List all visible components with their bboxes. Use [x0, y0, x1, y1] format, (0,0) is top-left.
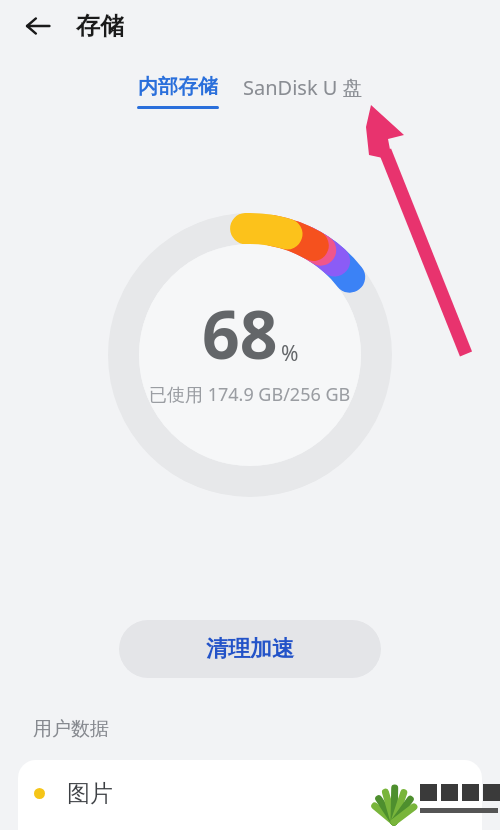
- staticText: %: [281, 339, 299, 368]
- staticText: 内部存储: [138, 74, 218, 99]
- button[interactable]: SanDisk U 盘: [239, 72, 367, 103]
- staticText: 68: [202, 288, 278, 378]
- staticText: 已使用 174.9 GB/256 GB: [149, 382, 351, 407]
- button[interactable]: 图片: [18, 760, 482, 830]
- button[interactable]: 清理加速: [119, 620, 381, 678]
- staticText: 清理加速: [206, 635, 294, 663]
- button[interactable]: 内部存储: [133, 72, 223, 111]
- staticText: 用户数据: [33, 717, 109, 741]
- staticText: 图片: [67, 779, 113, 808]
- button[interactable]: Back: [16, 4, 60, 48]
- staticText: SanDisk U 盘: [243, 74, 363, 101]
- staticText: 存储: [76, 11, 124, 41]
